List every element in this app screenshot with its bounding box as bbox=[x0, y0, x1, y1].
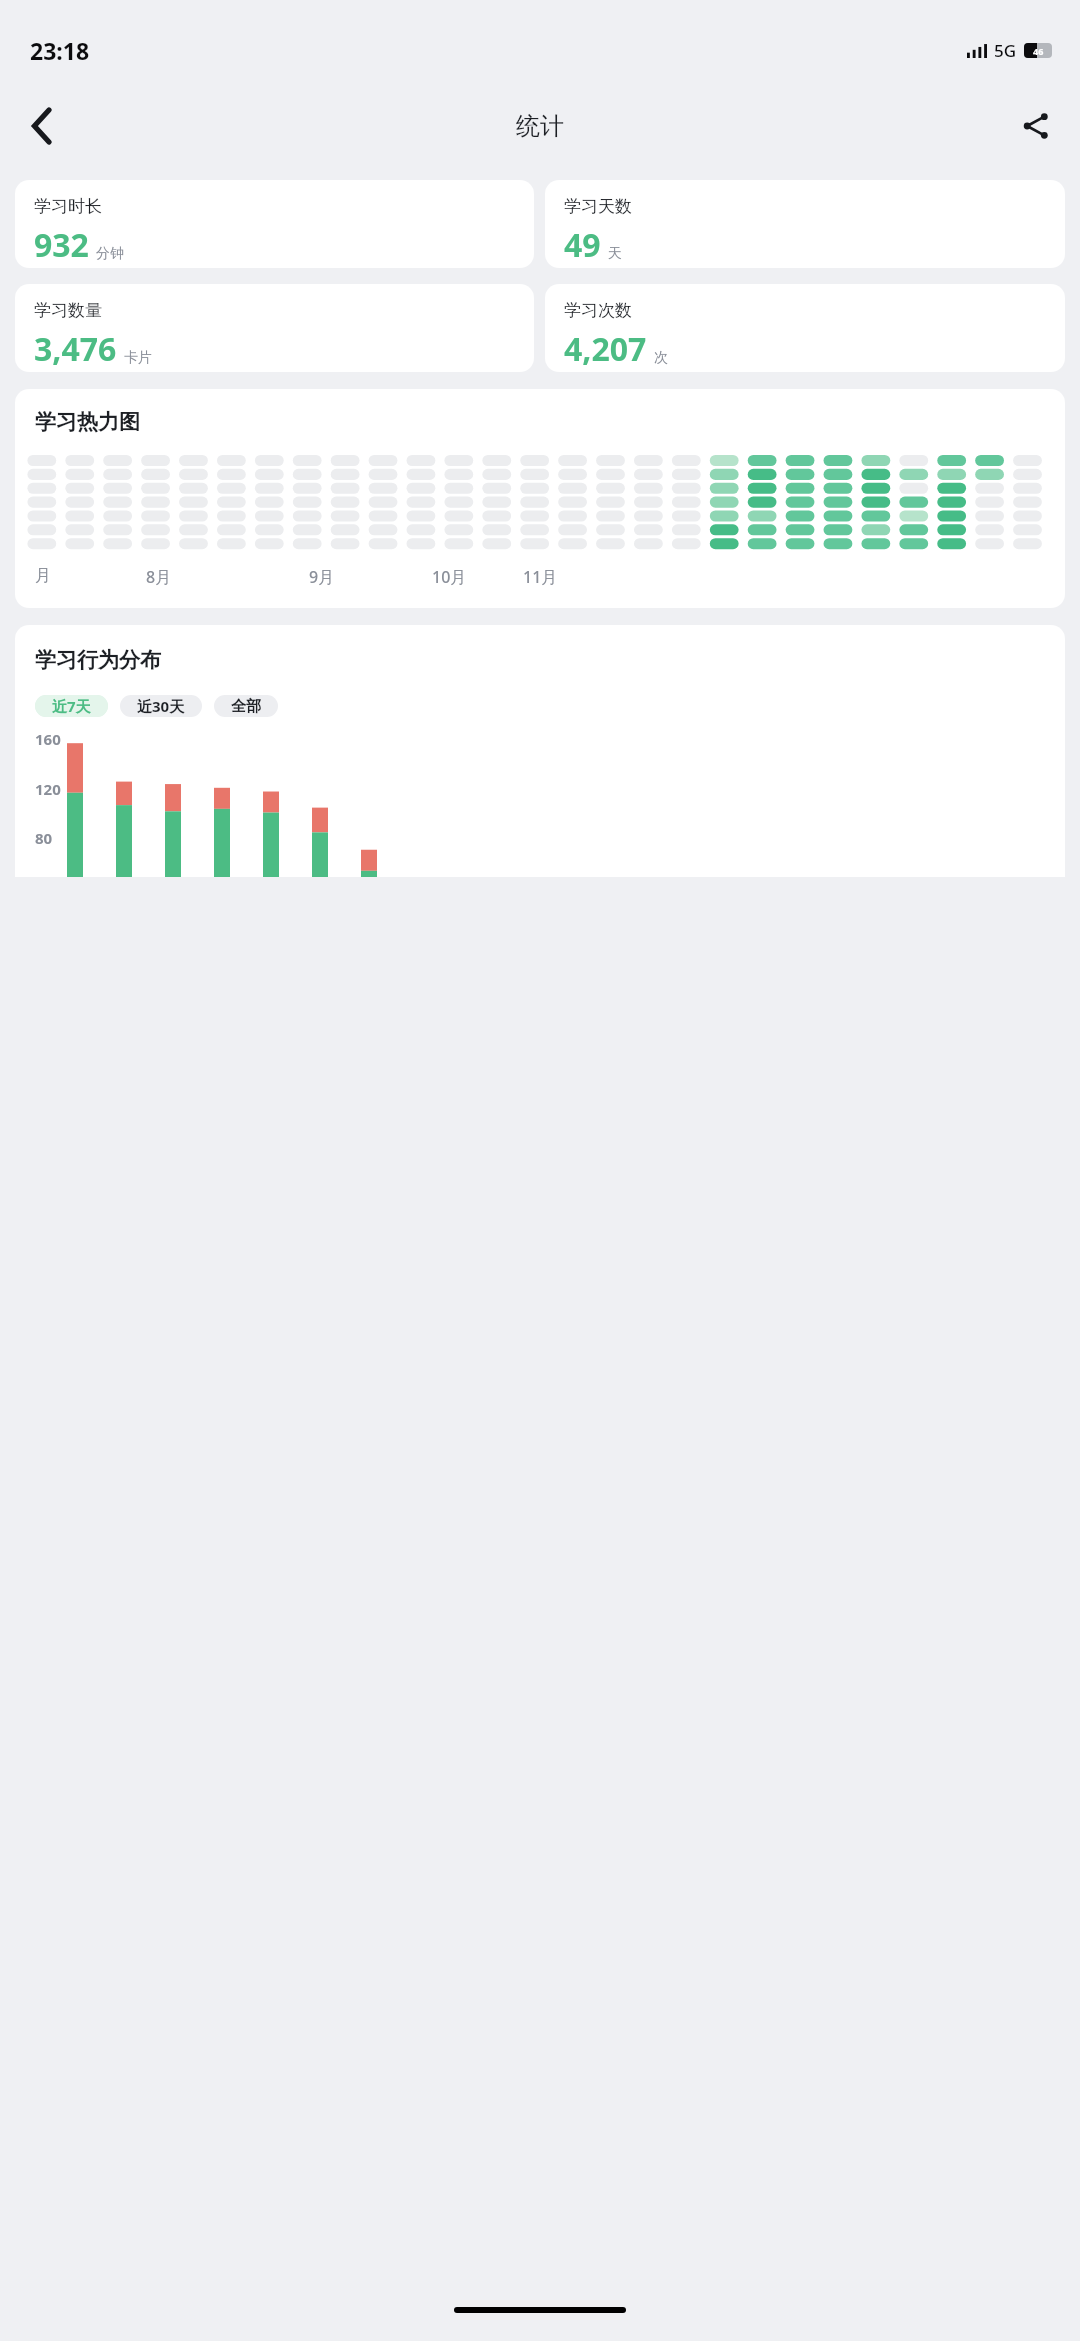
button[interactable]: Back bbox=[14, 98, 70, 154]
button[interactable]: 学习天数 bbox=[545, 180, 1065, 268]
button[interactable]: 学习时长 bbox=[15, 180, 534, 268]
button[interactable]: 学习热力图 bbox=[15, 389, 1065, 608]
staticText: 11月 bbox=[523, 566, 558, 588]
button[interactable]: 学习数量 bbox=[15, 284, 534, 372]
staticText: 46 bbox=[1033, 45, 1044, 57]
staticText: 学习次数 bbox=[564, 300, 632, 321]
staticText: 5G bbox=[994, 39, 1017, 62]
button[interactable]: 近7天 bbox=[35, 695, 108, 717]
staticText: 49 bbox=[564, 223, 601, 267]
staticText: 全部 bbox=[231, 697, 261, 716]
staticText: 9月 bbox=[309, 566, 335, 588]
staticText: 学习数量 bbox=[34, 300, 102, 321]
staticText: 4,207 bbox=[564, 327, 647, 371]
staticText: 80 bbox=[35, 828, 53, 848]
staticText: 学习时长 bbox=[34, 196, 102, 217]
button[interactable]: 近30天 bbox=[120, 695, 202, 717]
staticText: 卡片 bbox=[124, 349, 152, 367]
staticText: 120 bbox=[35, 779, 61, 799]
staticText: 近30天 bbox=[137, 696, 185, 716]
staticText: 10月 bbox=[432, 566, 467, 588]
staticText: 次 bbox=[654, 349, 668, 367]
staticText: 近7天 bbox=[52, 696, 91, 716]
button[interactable]: 全部 bbox=[214, 695, 278, 717]
button[interactable]: 学习次数 bbox=[545, 284, 1065, 372]
staticText: 天 bbox=[608, 245, 622, 263]
staticText: 932 bbox=[34, 223, 89, 267]
staticText: 8月 bbox=[146, 566, 172, 588]
staticText: 学习行为分布 bbox=[35, 647, 161, 673]
button[interactable]: Share bbox=[1008, 98, 1064, 154]
staticText: 3,476 bbox=[34, 327, 117, 371]
staticText: 分钟 bbox=[96, 245, 124, 263]
staticText: 学习热力图 bbox=[35, 409, 140, 435]
staticText: 23:18 bbox=[30, 35, 90, 66]
staticText: 统计 bbox=[516, 111, 564, 141]
staticText: 160 bbox=[35, 729, 61, 749]
staticText: 学习天数 bbox=[564, 196, 632, 217]
